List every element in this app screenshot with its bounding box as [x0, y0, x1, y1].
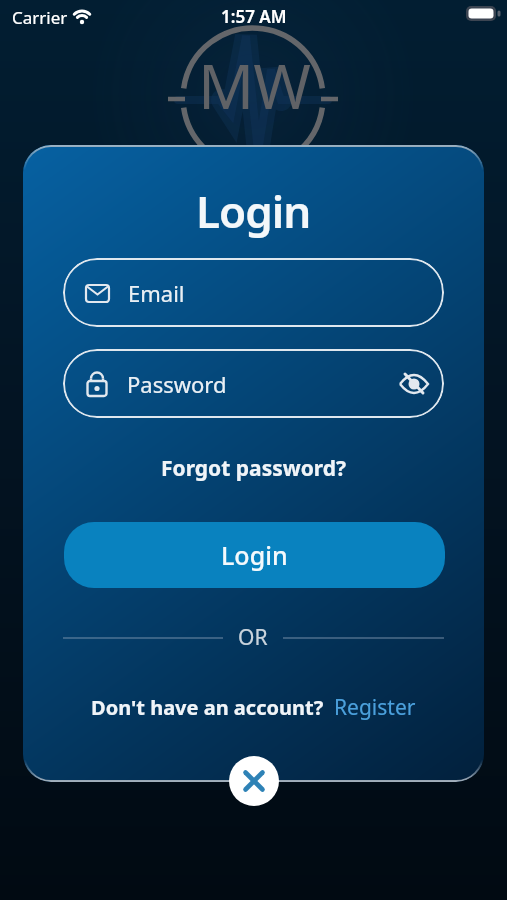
staticText: Login: [196, 181, 311, 241]
button[interactable]: Forgot password?: [23, 454, 484, 483]
staticText: Carrier: [12, 6, 68, 29]
staticText: OR: [238, 623, 268, 652]
button[interactable]: [398, 372, 430, 396]
staticText: Don't have an account?: [91, 694, 324, 721]
button[interactable]: [229, 756, 279, 806]
button[interactable]: Register: [334, 693, 416, 722]
button[interactable]: Password: [63, 349, 444, 418]
staticText: 1:57 AM: [221, 5, 287, 28]
button[interactable]: Email: [63, 258, 444, 327]
staticText: Email: [128, 278, 185, 308]
staticText: MW: [198, 43, 310, 127]
staticText: Forgot password?: [161, 454, 347, 483]
staticText: Register: [334, 693, 416, 722]
button[interactable]: Login: [64, 522, 445, 588]
staticText: Login: [221, 538, 288, 572]
staticText: Password: [127, 369, 227, 399]
